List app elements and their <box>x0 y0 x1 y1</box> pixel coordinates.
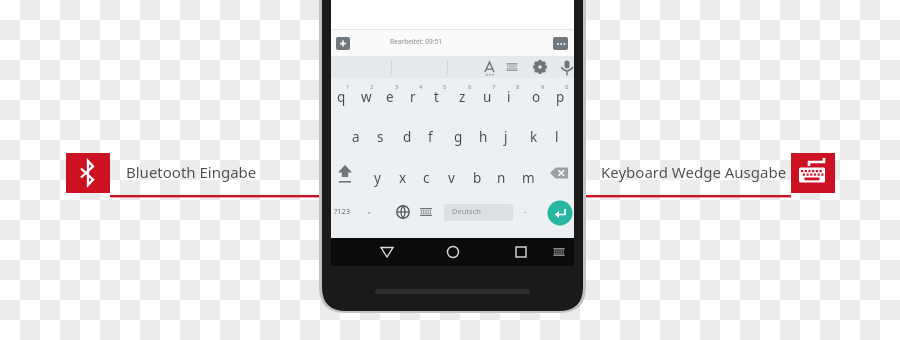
staticText: k <box>530 128 538 146</box>
staticText: x <box>399 169 407 187</box>
staticText: 6 <box>468 83 472 91</box>
staticText: 4 <box>419 83 423 91</box>
staticText: Deutsch <box>452 206 481 216</box>
staticText: Bearbeitet: 09:51 <box>390 37 442 46</box>
staticText: z <box>459 88 466 106</box>
staticText: o <box>532 88 541 106</box>
staticText: r <box>410 88 416 106</box>
staticText: 8 <box>516 83 520 91</box>
staticText: 1 <box>346 83 350 91</box>
staticText: b <box>473 169 482 187</box>
button[interactable]: Recents <box>505 239 541 265</box>
staticText: p <box>556 88 565 106</box>
staticText: 7 <box>492 83 496 91</box>
staticText: h <box>479 128 488 146</box>
staticText: 3 <box>395 83 399 91</box>
button[interactable]: Bluetooth Eingabe <box>66 153 110 193</box>
staticText: i <box>507 88 511 106</box>
staticText: v <box>448 169 455 187</box>
staticText: d <box>403 128 412 146</box>
staticText: 2 <box>370 83 374 91</box>
button[interactable]: Home <box>436 239 472 265</box>
staticText: g <box>454 128 463 146</box>
staticText: a <box>352 128 360 146</box>
staticText: . <box>524 203 527 215</box>
staticText: n <box>497 169 506 187</box>
staticText: s <box>377 128 384 146</box>
staticText: e <box>386 88 394 106</box>
staticText: t <box>434 88 439 106</box>
staticText: 5 <box>443 83 447 91</box>
staticText: j <box>504 128 508 146</box>
staticText: Bluetooth Eingabe <box>126 162 257 182</box>
staticText: w <box>361 88 372 106</box>
button[interactable]: Hide keyboard <box>546 239 576 265</box>
staticText: 0 <box>565 83 569 91</box>
staticText: f <box>428 128 433 146</box>
button[interactable]: Enter <box>546 200 574 228</box>
staticText: , <box>368 203 371 215</box>
button[interactable]: Keyboard Wedge Ausgabe <box>791 153 835 193</box>
staticText: Keyboard Wedge Ausgabe <box>601 162 787 182</box>
button[interactable]: Back <box>370 239 406 265</box>
staticText: y <box>374 169 381 187</box>
staticText: m <box>522 169 535 187</box>
staticText: 9 <box>541 83 545 91</box>
staticText: c <box>423 169 430 187</box>
staticText: l <box>555 128 559 146</box>
staticText: q <box>337 88 346 106</box>
staticText: u <box>483 88 492 106</box>
staticText: ?123 <box>334 206 351 216</box>
